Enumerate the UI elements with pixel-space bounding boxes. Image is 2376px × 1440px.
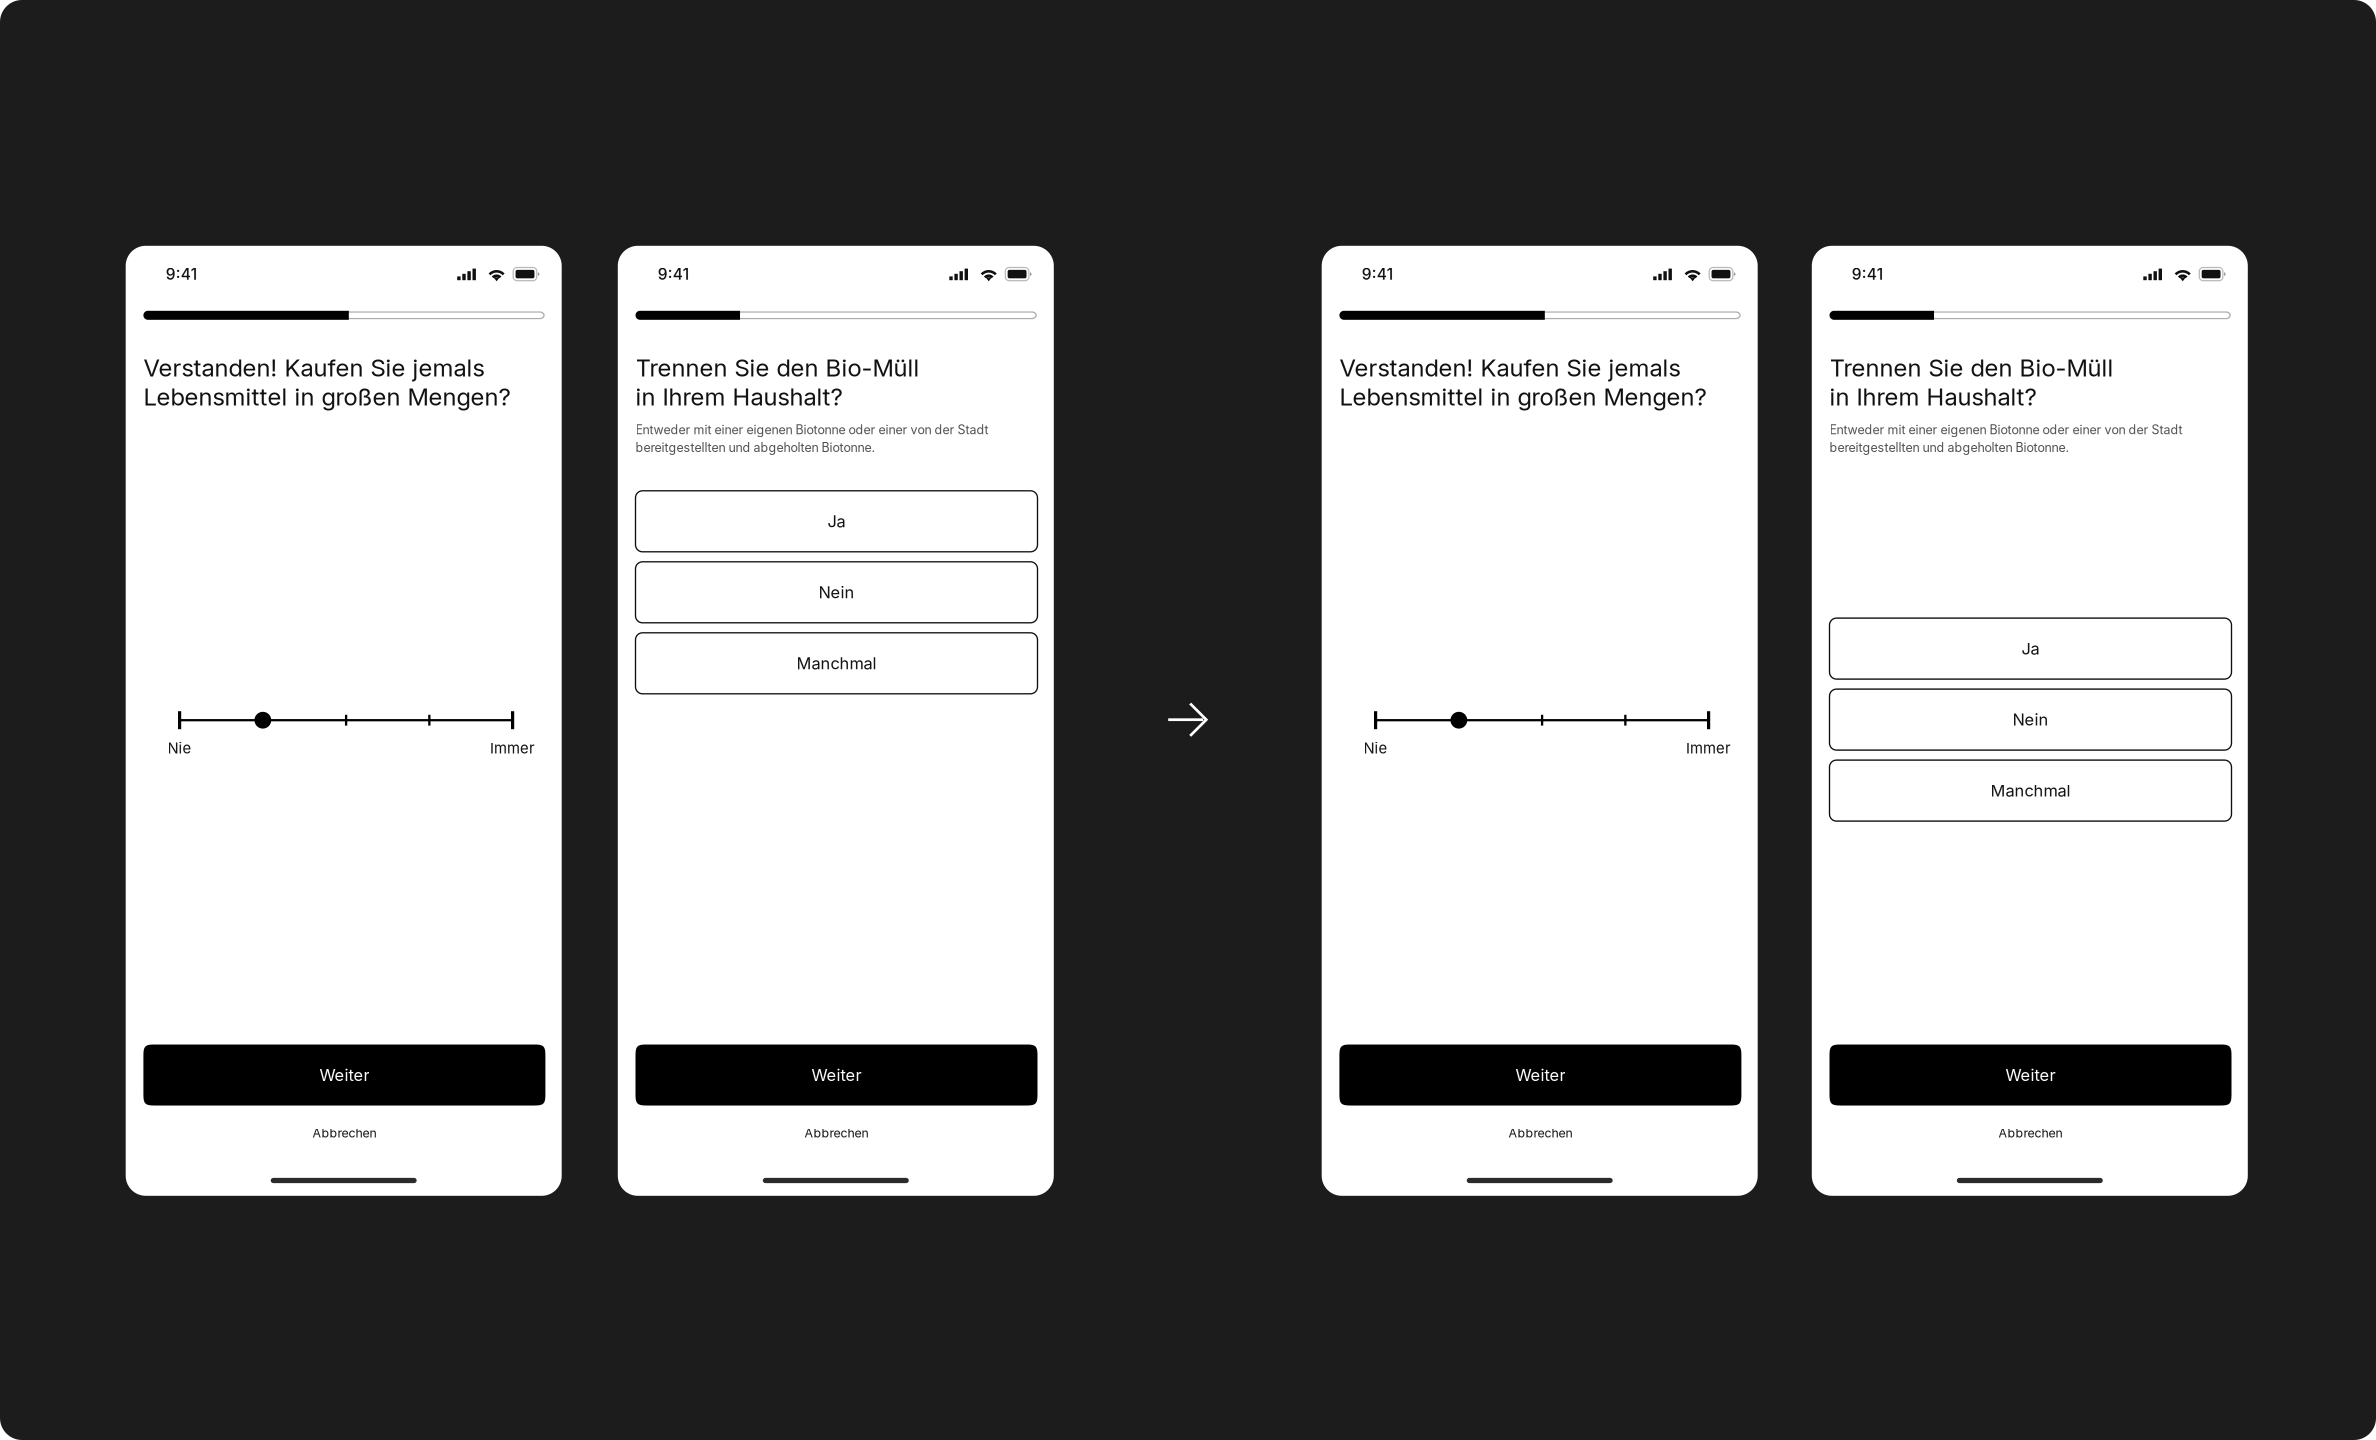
button[interactable]: Weiter: [1829, 1044, 2231, 1105]
button[interactable]: Manchmal: [635, 633, 1037, 694]
staticText: Verstanden! Kaufen Sie jemals Lebensmitt…: [143, 353, 510, 411]
button[interactable]: Nein: [635, 562, 1037, 623]
button[interactable]: Weiter: [143, 1044, 545, 1105]
staticText: Trennen Sie den Bio-Müll in Ihrem Hausha…: [1829, 353, 2113, 411]
button[interactable]: Abbrechen: [143, 1118, 545, 1148]
staticText: Weiter: [811, 1065, 861, 1085]
staticText: Weiter: [319, 1065, 369, 1085]
staticText: Verstanden! Kaufen Sie jemals Lebensmitt…: [1339, 353, 1706, 411]
button[interactable]: Weiter: [635, 1044, 1037, 1105]
staticText: Weiter: [1515, 1065, 1565, 1085]
button[interactable]: Abbrechen: [635, 1118, 1037, 1148]
staticText: Ja: [827, 511, 845, 531]
staticText: Immer: [490, 739, 535, 757]
button[interactable]: Abbrechen: [1829, 1118, 2231, 1148]
staticText: Ja: [2021, 639, 2039, 658]
staticText: Nein: [2012, 710, 2048, 729]
staticText: Abbrechen: [312, 1126, 376, 1140]
staticText: 9:41: [658, 265, 689, 283]
button[interactable]: Nein: [1829, 689, 2231, 750]
staticText: Abbrechen: [804, 1126, 868, 1140]
staticText: Nie: [1364, 739, 1388, 757]
staticText: Nie: [168, 739, 192, 757]
staticText: Manchmal: [796, 653, 876, 673]
staticText: bereitgestellten und abgeholten Biotonne…: [635, 440, 875, 455]
staticText: Nein: [818, 582, 854, 602]
staticText: Trennen Sie den Bio-Müll in Ihrem Hausha…: [635, 353, 919, 411]
staticText: Immer: [1686, 739, 1731, 757]
staticText: 9:41: [1852, 265, 1883, 283]
staticText: Abbrechen: [1508, 1126, 1572, 1140]
button[interactable]: Weiter: [1339, 1044, 1741, 1105]
staticText: 9:41: [1362, 265, 1393, 283]
staticText: Entweder mit einer eigenen Biotonne oder…: [1829, 422, 2182, 437]
staticText: 9:41: [166, 265, 197, 283]
staticText: bereitgestellten und abgeholten Biotonne…: [1829, 440, 2069, 455]
staticText: Entweder mit einer eigenen Biotonne oder…: [635, 422, 988, 437]
button[interactable]: Abbrechen: [1339, 1118, 1741, 1148]
button[interactable]: Ja: [635, 491, 1037, 552]
staticText: Weiter: [2005, 1065, 2055, 1085]
staticText: Abbrechen: [1998, 1126, 2062, 1140]
button[interactable]: Ja: [1829, 618, 2231, 679]
staticText: Manchmal: [1990, 781, 2070, 800]
button[interactable]: Manchmal: [1829, 760, 2231, 821]
